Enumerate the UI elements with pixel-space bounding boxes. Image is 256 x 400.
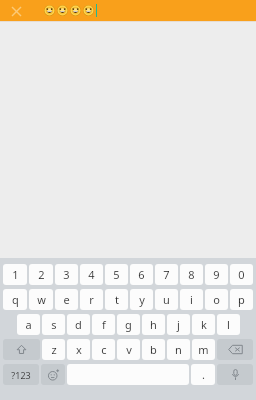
button[interactable]: 2 xyxy=(29,264,53,285)
staticText: s xyxy=(51,317,57,332)
staticText: x xyxy=(76,342,82,357)
button[interactable]: l xyxy=(217,314,240,335)
button[interactable]: z xyxy=(42,339,65,360)
staticText: a xyxy=(25,317,32,332)
button[interactable]: m xyxy=(192,339,215,360)
button[interactable]: b xyxy=(142,339,165,360)
button[interactable] xyxy=(44,0,97,21)
staticText: w xyxy=(37,292,46,307)
staticText: 1 xyxy=(12,267,19,282)
button[interactable]: x xyxy=(67,339,90,360)
staticText: b xyxy=(150,342,157,357)
staticText: o xyxy=(213,292,220,307)
staticText: g xyxy=(125,317,132,332)
button[interactable]: . xyxy=(191,364,215,385)
button[interactable]: o xyxy=(205,289,228,310)
staticText: 5 xyxy=(113,267,120,282)
staticText: n xyxy=(175,342,182,357)
button[interactable]: s xyxy=(42,314,65,335)
button[interactable]: 5 xyxy=(105,264,128,285)
staticText: 8 xyxy=(188,267,195,282)
staticText: z xyxy=(51,342,57,357)
staticText: . xyxy=(202,367,205,382)
button[interactable]: 4 xyxy=(80,264,103,285)
button[interactable]: 8 xyxy=(180,264,203,285)
button[interactable]: k xyxy=(192,314,215,335)
staticText: r xyxy=(89,292,94,307)
button[interactable]: g xyxy=(117,314,140,335)
staticText: k xyxy=(201,317,207,332)
button[interactable]: 3 xyxy=(55,264,78,285)
button[interactable]: u xyxy=(155,289,178,310)
staticText: d xyxy=(75,317,82,332)
button[interactable]: r xyxy=(80,289,103,310)
staticText: j xyxy=(177,317,180,332)
staticText: m xyxy=(198,342,209,357)
button[interactable]: y xyxy=(130,289,153,310)
button[interactable]: d xyxy=(67,314,90,335)
button[interactable]: w xyxy=(29,289,53,310)
button[interactable]: p xyxy=(230,289,253,310)
staticText: v xyxy=(126,342,132,357)
staticText: i xyxy=(190,292,193,307)
button[interactable]: c xyxy=(92,339,115,360)
button[interactable]: f xyxy=(92,314,115,335)
button[interactable]: t xyxy=(105,289,128,310)
staticText: u xyxy=(163,292,170,307)
button[interactable]: v xyxy=(117,339,140,360)
staticText: 9 xyxy=(213,267,220,282)
button[interactable]: 9 xyxy=(205,264,228,285)
staticText: q xyxy=(12,292,19,307)
button[interactable]: Emoji xyxy=(41,364,65,385)
staticText: 7 xyxy=(163,267,170,282)
button[interactable]: i xyxy=(180,289,203,310)
staticText: p xyxy=(238,292,245,307)
button[interactable]: 0 xyxy=(230,264,253,285)
staticText: c xyxy=(101,342,107,357)
staticText: f xyxy=(102,317,106,332)
button[interactable]: Shift xyxy=(3,339,40,360)
button[interactable]: Close xyxy=(6,1,26,21)
staticText: e xyxy=(63,292,70,307)
staticText: ?123 xyxy=(11,369,31,381)
staticText: 4 xyxy=(88,267,95,282)
staticText: 3 xyxy=(63,267,70,282)
staticText: h xyxy=(150,317,157,332)
button[interactable]: Voice input xyxy=(217,364,253,385)
staticText: y xyxy=(139,292,145,307)
staticText: t xyxy=(115,292,119,307)
button[interactable]: ?123 xyxy=(3,364,39,385)
staticText: 6 xyxy=(138,267,145,282)
staticText: 2 xyxy=(38,267,45,282)
staticText: 0 xyxy=(238,267,245,282)
button[interactable]: q xyxy=(3,289,27,310)
button[interactable]: Backspace xyxy=(217,339,253,360)
button[interactable]: a xyxy=(17,314,40,335)
button[interactable]: e xyxy=(55,289,78,310)
button[interactable]: 1 xyxy=(3,264,27,285)
button[interactable]: j xyxy=(167,314,190,335)
button[interactable]: n xyxy=(167,339,190,360)
button[interactable]: 6 xyxy=(130,264,153,285)
button[interactable]: h xyxy=(142,314,165,335)
button[interactable]: 7 xyxy=(155,264,178,285)
staticText: l xyxy=(227,317,230,332)
